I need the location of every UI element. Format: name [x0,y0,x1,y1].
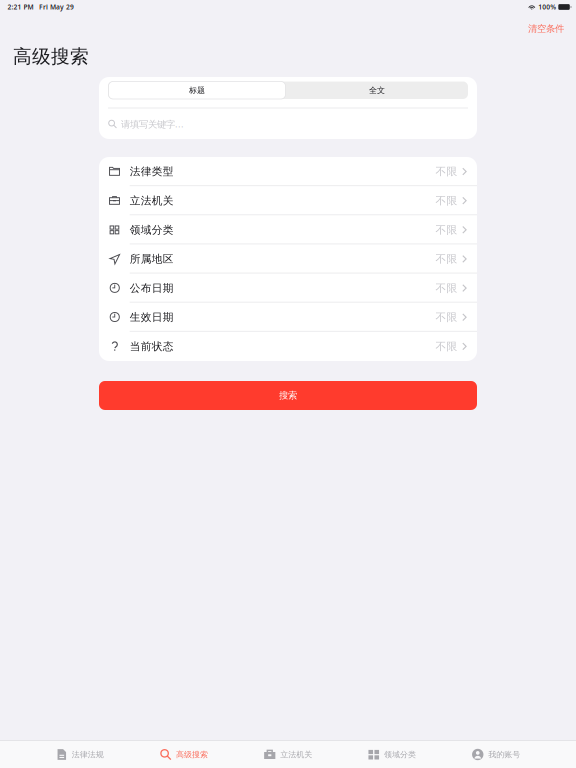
staticText: 法律类型 [130,165,174,178]
staticText: 立法机关 [130,194,174,207]
button[interactable]: 生效日期 [99,303,477,332]
staticText: 不限 [435,165,457,178]
button[interactable]: 我的账号 [444,741,548,767]
staticText: 立法机关 [280,750,312,759]
staticText: 清空条件 [528,23,564,34]
button[interactable]: 立法机关 [236,741,340,767]
staticText: 不限 [435,340,457,353]
staticText: 法律法规 [72,750,104,759]
button[interactable]: 当前状态 [99,332,477,361]
staticText: 请填写关键字... [121,118,184,130]
staticText: 领域分类 [130,223,174,236]
staticText: 标题 [189,85,205,95]
button[interactable]: 立法机关 [99,186,477,215]
staticText: 不限 [435,311,457,324]
staticText: 当前状态 [130,340,174,353]
button[interactable]: 搜索 [99,381,477,410]
staticText: 2:21 PM [7,3,33,11]
staticText: 高级搜索 [176,750,208,759]
staticText: 领域分类 [384,750,416,759]
staticText: 搜索 [279,390,297,401]
button[interactable]: 法律法规 [28,741,132,767]
staticText: 生效日期 [130,311,174,324]
button[interactable]: 法律类型 [99,157,477,186]
staticText: 不限 [435,252,457,265]
staticText: 我的账号 [488,750,520,759]
staticText: 不限 [435,282,457,295]
staticText: 全文 [369,85,385,95]
staticText: Fri May 29 [39,3,74,11]
button[interactable]: 高级搜索 [132,741,236,767]
staticText: 高级搜索 [13,45,89,68]
staticText: 不限 [435,194,457,207]
button[interactable]: 领域分类 [340,741,444,767]
button[interactable]: 领域分类 [99,215,477,244]
button[interactable]: 全文 [286,81,468,99]
button[interactable]: 公布日期 [99,274,477,303]
staticText: 所属地区 [130,252,174,265]
staticText: 100% [538,3,556,11]
staticText: 不限 [435,223,457,236]
button[interactable]: 所属地区 [99,244,477,273]
staticText: 公布日期 [130,282,174,295]
button[interactable]: 标题 [108,81,286,99]
button[interactable]: 清空条件 [520,20,576,37]
